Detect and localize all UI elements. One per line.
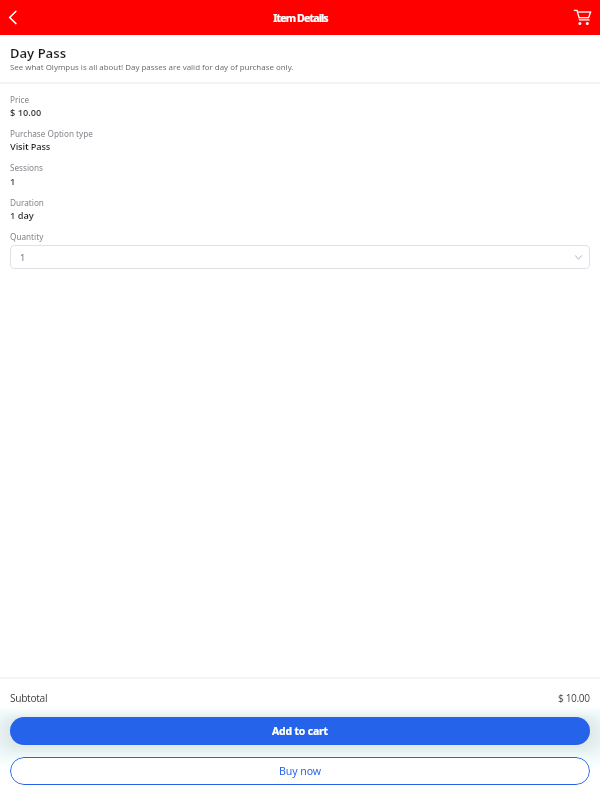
staticText: Item Details — [273, 11, 328, 25]
staticText: 1 — [20, 251, 26, 264]
staticText: Day Pass — [10, 44, 67, 62]
staticText: $ 10.00 — [10, 106, 42, 119]
staticText: Purchase Option type — [10, 128, 93, 139]
staticText: See what Olympus is all about! Day passe… — [10, 62, 294, 73]
button[interactable]: Shopping cart — [566, 0, 600, 35]
staticText: Duration — [10, 197, 44, 208]
staticText: Visit Pass — [10, 140, 51, 153]
staticText: Price — [10, 94, 29, 105]
staticText: Quantity — [10, 231, 44, 242]
staticText: $ 10.00 — [558, 691, 590, 705]
button[interactable]: Quantity: 1 — [10, 245, 590, 269]
staticText: 1 day — [10, 209, 34, 222]
button[interactable]: Buy now — [10, 757, 590, 785]
staticText: 1 — [10, 175, 16, 188]
staticText: Sessions — [10, 162, 44, 173]
staticText: Add to cart — [272, 724, 328, 738]
staticText: Buy now — [279, 764, 321, 778]
staticText: Subtotal — [10, 691, 48, 705]
button[interactable]: Add to cart — [10, 717, 590, 745]
button[interactable]: Back — [0, 0, 30, 35]
